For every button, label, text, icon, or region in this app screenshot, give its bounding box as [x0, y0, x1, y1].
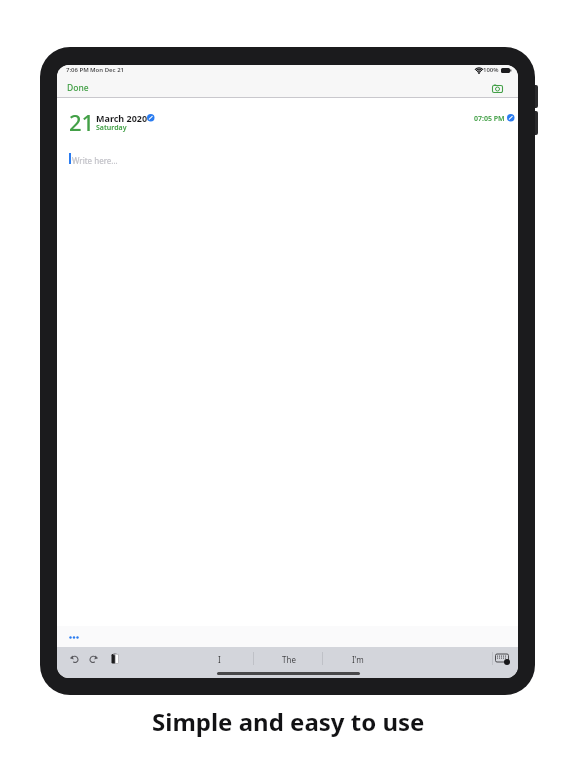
staticText: 21 [69, 107, 95, 137]
staticText: 7:06 PM [66, 66, 89, 74]
staticText: I [218, 654, 221, 665]
staticText: Write here... [72, 155, 118, 166]
staticText: March 2020 [96, 112, 148, 124]
staticText: Simple and easy to use [152, 705, 425, 738]
staticText: Saturday [96, 123, 127, 133]
staticText: I'm [352, 654, 364, 665]
staticText: The [282, 654, 296, 665]
staticText: Mon Dec 21 [90, 66, 125, 74]
staticText: Done [67, 82, 89, 94]
staticText: 100% [483, 66, 499, 74]
staticText: 07:05 PM [474, 114, 505, 124]
